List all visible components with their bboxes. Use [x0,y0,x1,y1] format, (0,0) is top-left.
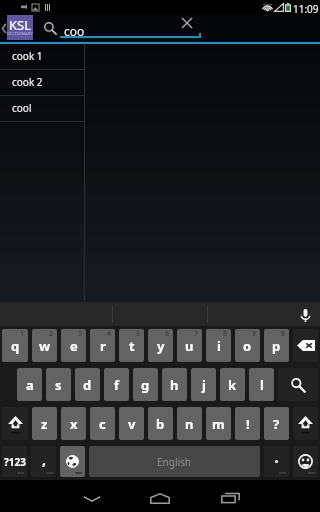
staticText: t [129,337,135,355]
button[interactable]: h [162,368,187,401]
staticText: y [157,337,165,355]
button[interactable]: w [32,329,57,362]
button[interactable]: Emoji [293,446,318,477]
staticText: p [272,337,281,355]
staticText: x [70,415,78,433]
button[interactable]: Backspace [293,329,318,362]
staticText: i [217,337,221,355]
button[interactable]: z [32,407,57,440]
staticText: 3 [78,329,83,339]
staticText: z [41,415,48,433]
staticText: w [39,337,51,355]
button[interactable]: Back [74,486,110,508]
button[interactable]: p [264,329,289,362]
button[interactable]: g [133,368,158,401]
staticText: s [55,376,62,394]
staticText: , [42,450,46,469]
staticText: d [83,376,92,394]
button[interactable]: Comma [31,446,56,477]
staticText: 6 [165,329,170,339]
staticText: coo [64,23,85,39]
button[interactable]: cook 2 [0,70,84,96]
staticText: DICTIONARY [7,31,33,36]
staticText: l [260,376,264,394]
button[interactable]: r [90,329,115,362]
button[interactable]: l [249,368,274,401]
staticText: u [185,337,194,355]
button[interactable]: c [90,407,115,440]
staticText: 2 [49,329,54,339]
staticText: o [243,337,252,355]
button[interactable]: Clear query [178,15,196,33]
button[interactable]: o [235,329,260,362]
staticText: a [26,376,34,394]
staticText: ? [273,415,280,433]
button[interactable]: i [206,329,231,362]
button[interactable]: y [148,329,173,362]
staticText: 9 [252,329,257,339]
staticText: c [99,415,106,433]
button[interactable]: s [46,368,71,401]
button[interactable]: Change language [60,446,85,477]
staticText: n [185,415,194,433]
staticText: English [157,455,192,469]
button[interactable]: a [17,368,42,401]
button[interactable]: b [148,407,173,440]
button[interactable]: j [191,368,216,401]
button[interactable]: ?123 [2,446,27,477]
staticText: g [141,376,150,394]
button[interactable]: cook 1 [0,44,84,70]
button[interactable]: ? [264,407,289,440]
staticText: j [202,376,206,394]
staticText: KSL [9,16,31,34]
staticText: 11:09 [293,2,319,16]
staticText: k [228,376,237,394]
button[interactable]: Shift [293,407,318,440]
button[interactable]: ! [235,407,260,440]
button[interactable]: e [61,329,86,362]
staticText: cool [12,101,32,115]
button[interactable]: cool [0,96,84,122]
staticText: 8 [223,329,228,339]
staticText: r [100,337,106,355]
button[interactable]: Navigate up [0,15,7,42]
button[interactable]: f [104,368,129,401]
staticText: 4 [107,329,112,339]
staticText: q [11,337,20,355]
button[interactable]: Shift [2,407,28,440]
staticText: 0 [281,329,286,339]
button[interactable]: Search [278,368,318,401]
button[interactable]: Home [142,486,178,508]
staticText: e [70,337,78,355]
staticText: h [170,376,179,394]
button[interactable]: Period [264,446,289,477]
button[interactable]: n [177,407,202,440]
staticText: ! [246,415,250,433]
button[interactable]: x [61,407,86,440]
staticText: m [212,415,225,433]
button[interactable]: Recent apps [212,486,248,508]
staticText: b [156,415,165,433]
button[interactable]: t [119,329,144,362]
button[interactable]: English [89,446,260,477]
staticText: 5 [136,329,141,339]
button[interactable]: u [177,329,202,362]
staticText: ?123 [4,455,26,469]
button[interactable]: d [75,368,100,401]
button[interactable]: k [220,368,245,401]
staticText: f [114,376,120,394]
staticText: cook 1 [12,49,43,63]
button[interactable]: m [206,407,231,440]
button[interactable] [207,302,320,326]
button[interactable]: v [119,407,144,440]
staticText: 1 [20,329,25,339]
staticText: cook 2 [12,75,43,89]
button[interactable]: q [2,329,28,362]
staticText: v [128,415,136,433]
staticText: 7 [194,329,199,339]
button[interactable]: KSL Dictionary [7,15,33,40]
button[interactable]: Voice input [295,304,315,324]
